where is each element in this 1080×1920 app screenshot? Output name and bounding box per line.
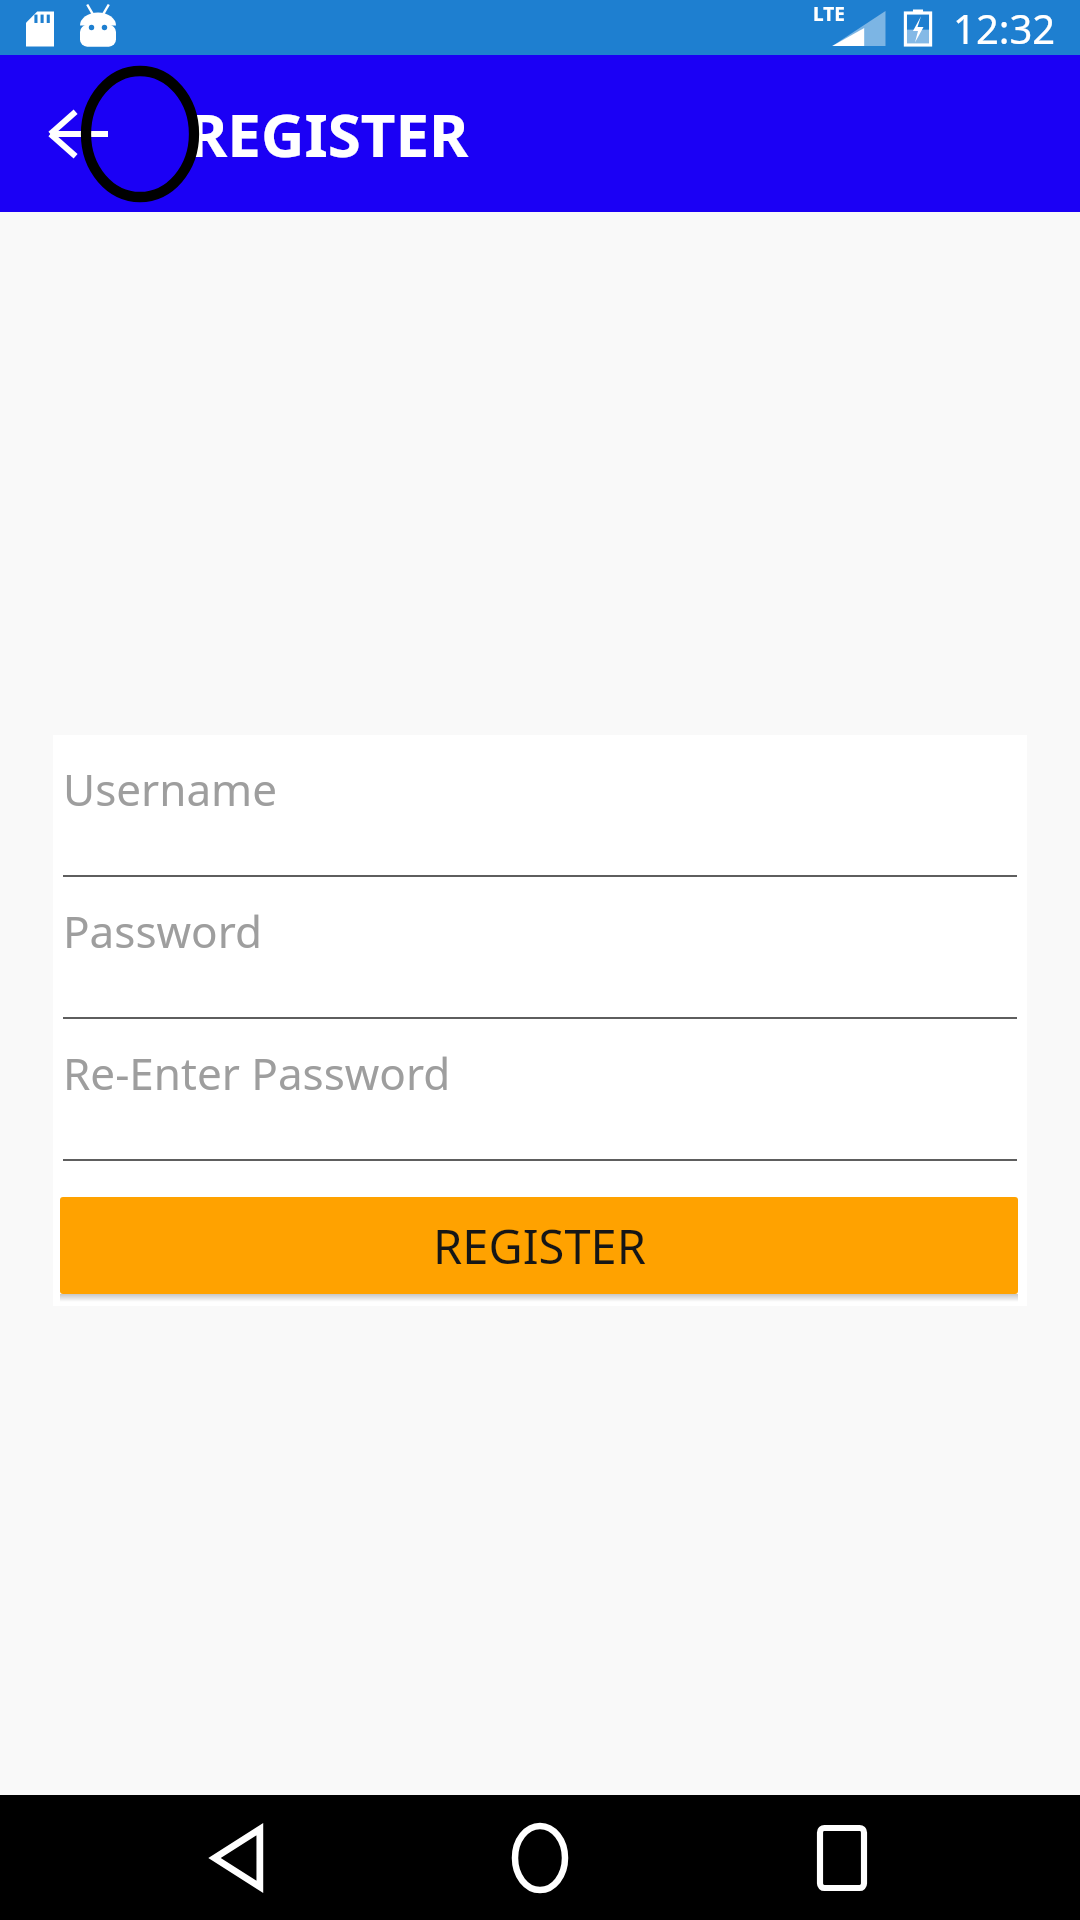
staticText: Password [63,901,263,961]
button[interactable]: Back [176,1796,300,1920]
button[interactable]: Recent apps [780,1796,904,1920]
button[interactable]: REGISTER [60,1197,1018,1294]
button[interactable]: Password [53,877,1027,1019]
staticText: REGISTER [188,93,469,175]
button[interactable]: Home [478,1796,602,1920]
staticText: REGISTER [433,1214,646,1278]
staticText: Username [63,759,278,819]
button[interactable]: Navigate up [20,76,136,192]
button[interactable]: Re-Enter Password [53,1019,1027,1161]
button[interactable]: Username [53,735,1027,877]
staticText: LTE [813,1,845,27]
staticText: 12:32 [953,1,1056,55]
staticText: Re-Enter Password [63,1043,451,1103]
